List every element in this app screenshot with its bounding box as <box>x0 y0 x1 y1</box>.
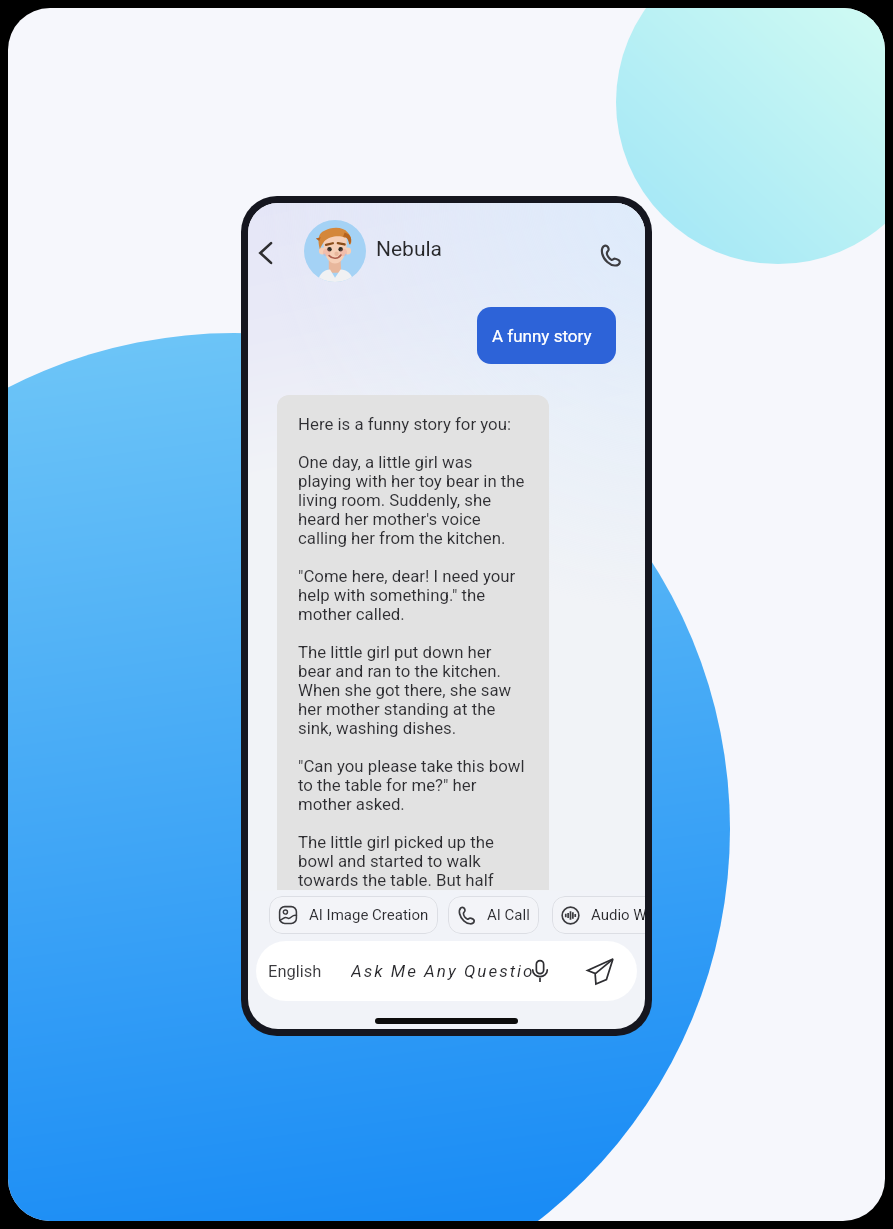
staticText: AI Call <box>487 906 530 924</box>
button[interactable]: AI Image Creation <box>269 896 438 934</box>
staticText: Nebula <box>376 237 443 262</box>
staticText: A funny story <box>492 326 592 346</box>
button[interactable]: A funny story <box>477 307 616 364</box>
staticText: Here is a funny story for you: One day, … <box>298 414 526 890</box>
button[interactable]: Call <box>590 235 631 276</box>
button[interactable]: Voice input <box>524 955 556 987</box>
button[interactable]: English <box>256 941 637 1001</box>
button[interactable]: Send <box>582 953 618 989</box>
button[interactable]: Back <box>248 233 285 273</box>
staticText: Audio Writing <box>591 906 645 924</box>
staticText: Ask Me Any Question <box>351 961 534 981</box>
staticText: AI Image Creation <box>309 906 429 924</box>
button[interactable]: Here is a funny story for you: One day, … <box>277 395 549 890</box>
button[interactable]: Audio Writing <box>552 896 645 934</box>
button[interactable]: AI Call <box>448 896 539 934</box>
staticText: English <box>268 962 322 981</box>
